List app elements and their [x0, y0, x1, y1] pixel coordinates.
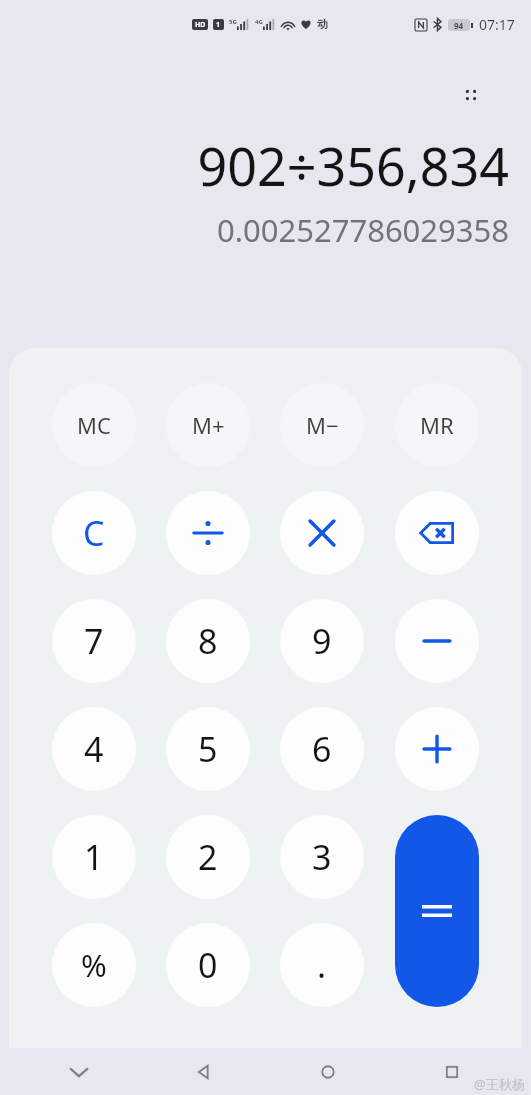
staticText: 6 — [312, 726, 332, 772]
staticText: 0 — [198, 942, 218, 988]
staticText: 4G — [255, 18, 263, 26]
button[interactable]: M− — [280, 383, 364, 467]
staticText: HD — [195, 20, 206, 30]
staticText: MR — [420, 410, 454, 440]
button[interactable]: Back — [180, 1049, 226, 1095]
button[interactable]: 9 — [280, 599, 364, 683]
button[interactable]: 7 — [52, 599, 136, 683]
staticText: 1 — [216, 20, 221, 30]
button[interactable]: Recents — [429, 1049, 475, 1095]
staticText: 94 — [454, 20, 464, 31]
button[interactable]: MC — [52, 383, 136, 467]
staticText: @王秋杨 — [474, 1075, 525, 1093]
staticText: 9 — [312, 618, 332, 664]
staticText: 3 — [312, 834, 332, 880]
staticText: 8 — [198, 618, 218, 664]
button[interactable]: 6 — [280, 707, 364, 791]
staticText: M+ — [192, 410, 225, 440]
button[interactable]: Multiply — [280, 491, 364, 575]
button[interactable]: 1 — [52, 815, 136, 899]
button[interactable]: Backspace — [395, 491, 479, 575]
staticText: 5G — [229, 18, 237, 26]
staticText: MC — [77, 410, 111, 440]
button[interactable]: Home — [305, 1049, 351, 1095]
button[interactable]: Equals — [395, 815, 479, 1007]
button[interactable]: Hide keyboard — [56, 1049, 102, 1095]
staticText: 7 — [84, 618, 104, 664]
button[interactable]: M+ — [166, 383, 250, 467]
staticText: . — [317, 942, 327, 988]
staticText: 07:17 — [479, 15, 515, 34]
button[interactable]: 3 — [280, 815, 364, 899]
staticText: M− — [306, 410, 339, 440]
button[interactable]: 8 — [166, 599, 250, 683]
staticText: 动 — [317, 17, 328, 31]
staticText: 5 — [198, 726, 218, 772]
staticText: 902÷356,834 — [197, 130, 509, 201]
staticText: % — [81, 944, 107, 986]
button[interactable]: . — [280, 923, 364, 1007]
button[interactable]: 2 — [166, 815, 250, 899]
button[interactable]: Minus — [395, 599, 479, 683]
button[interactable]: % — [52, 923, 136, 1007]
button[interactable]: More options — [452, 76, 490, 114]
button[interactable]: Plus — [395, 707, 479, 791]
staticText: C — [83, 510, 105, 556]
button[interactable]: 0 — [166, 923, 250, 1007]
staticText: 1 — [84, 834, 104, 880]
staticText: 0.002527786029358 — [216, 209, 509, 251]
button[interactable]: MR — [395, 383, 479, 467]
staticText: 4 — [84, 726, 104, 772]
button[interactable]: 4 — [52, 707, 136, 791]
staticText: 2 — [198, 834, 218, 880]
button[interactable]: 5 — [166, 707, 250, 791]
button[interactable]: C — [52, 491, 136, 575]
button[interactable]: Divide — [166, 491, 250, 575]
